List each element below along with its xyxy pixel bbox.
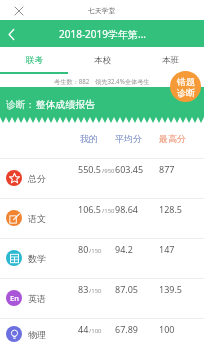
staticText: 94.2 xyxy=(115,243,159,255)
staticText: 我的 xyxy=(80,133,115,144)
staticText: 100 xyxy=(159,323,175,335)
staticText: 67.89 xyxy=(115,323,159,335)
staticText: 语文 xyxy=(28,213,46,224)
staticText: 联考 xyxy=(26,55,43,66)
staticText: En xyxy=(10,293,19,303)
button[interactable]: 数学 xyxy=(0,239,204,278)
staticText: 本校 xyxy=(94,55,111,66)
staticText: 83 xyxy=(78,283,89,295)
staticText: 七天学堂 xyxy=(88,6,116,15)
button[interactable]: 总分 xyxy=(0,159,204,198)
staticText: 98.64 xyxy=(115,203,159,215)
button[interactable]: Back xyxy=(0,23,22,45)
button[interactable]: 物理 xyxy=(0,319,204,350)
staticText: 603.45 xyxy=(115,163,159,175)
staticText: 整体成绩报告 xyxy=(36,99,95,111)
button[interactable]: Close xyxy=(10,2,27,19)
staticText: 2018-2019学年第… xyxy=(59,27,146,41)
button[interactable]: 联考 xyxy=(0,47,68,73)
staticText: 考生数：882 xyxy=(54,77,90,85)
staticText: 平均分 xyxy=(115,133,159,144)
staticText: 物理 xyxy=(28,329,46,340)
staticText: 80 xyxy=(78,243,89,255)
staticText: 诊断： xyxy=(6,99,36,111)
staticText: 英语 xyxy=(28,293,46,304)
staticText: 87.05 xyxy=(115,283,159,295)
button[interactable]: En xyxy=(0,279,204,318)
staticText: 106.5 xyxy=(78,203,102,215)
staticText: 877 xyxy=(159,163,175,175)
staticText: 领先32.4%全体考生 xyxy=(95,77,150,85)
staticText: 128.5 xyxy=(159,203,183,215)
staticText: 数学 xyxy=(28,253,46,264)
staticText: 最高分 xyxy=(159,133,186,144)
button[interactable]: 本班 xyxy=(136,47,204,73)
staticText: 总分 xyxy=(28,173,46,184)
staticText: 本班 xyxy=(162,55,179,66)
staticText: /150 xyxy=(89,247,102,255)
button[interactable]: 本校 xyxy=(68,47,136,73)
button[interactable]: 语文 xyxy=(0,199,204,238)
staticText: 诊断 xyxy=(177,87,195,98)
staticText: 139.5 xyxy=(159,283,183,295)
staticText: /150 xyxy=(102,207,115,215)
staticText: 错题 xyxy=(177,76,195,87)
staticText: /100 xyxy=(89,327,102,335)
staticText: /150 xyxy=(89,287,102,295)
staticText: /950 xyxy=(102,167,115,175)
button[interactable]: 错题 xyxy=(170,71,201,102)
staticText: 550.5 xyxy=(78,163,102,175)
staticText: 44 xyxy=(78,323,89,335)
staticText: 147 xyxy=(159,243,175,255)
